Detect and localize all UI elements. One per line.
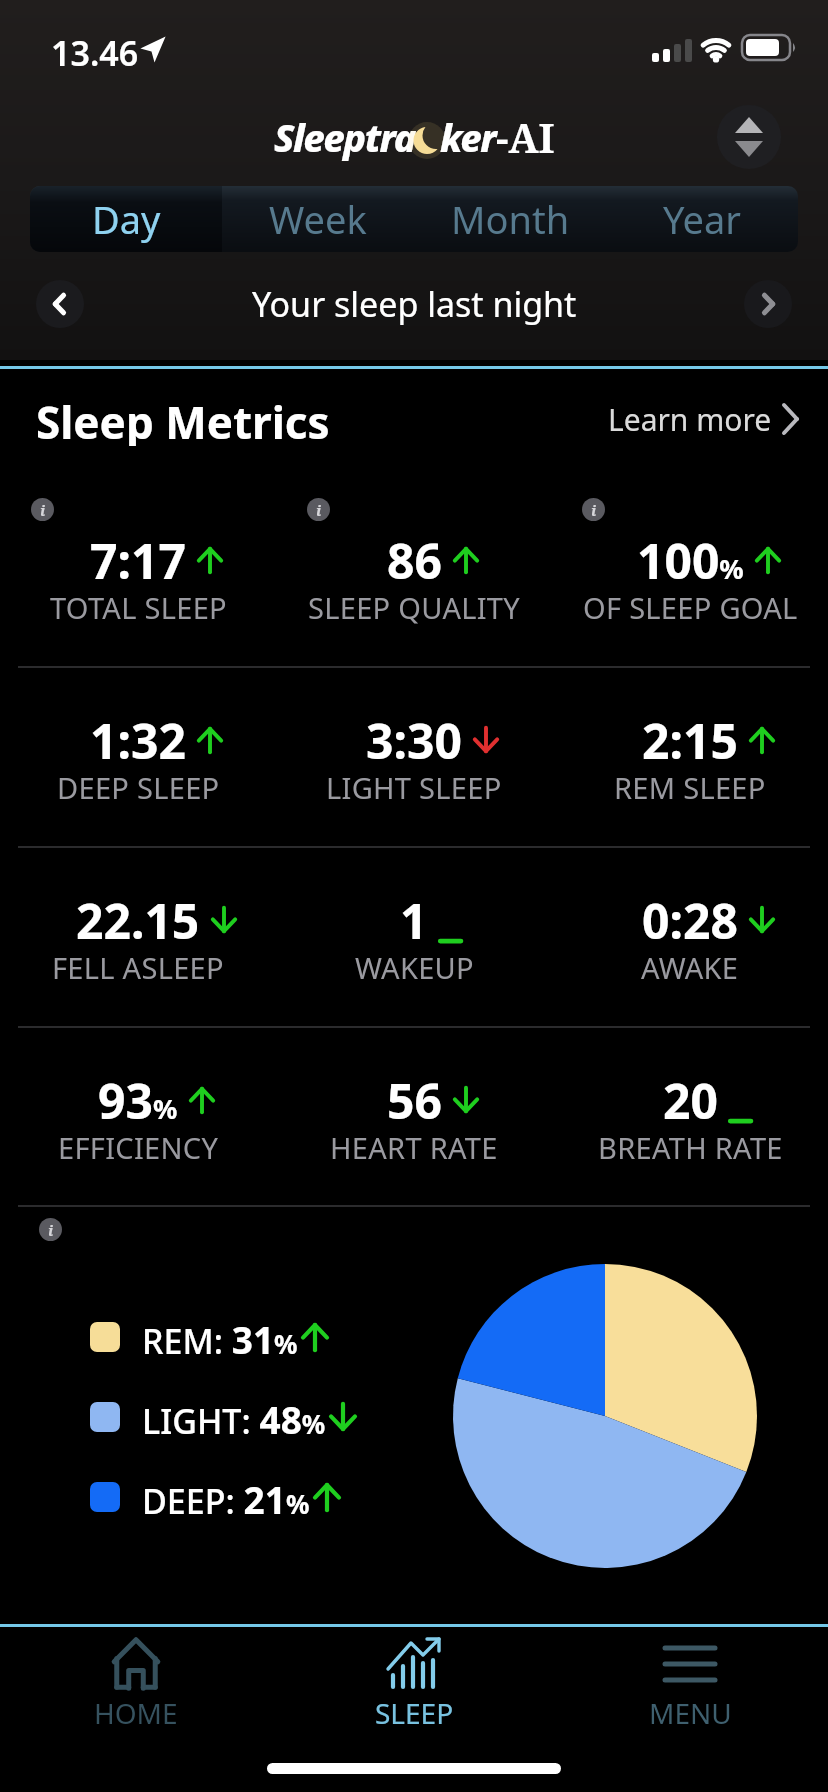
staticText: FELL ASLEEP (52, 948, 224, 984)
staticText: REM SLEEP (614, 768, 766, 804)
staticText: 56 (387, 1068, 442, 1132)
button[interactable] (744, 280, 792, 328)
staticText: LIGHT SLEEP (326, 768, 502, 804)
staticText: Your sleep last night (252, 281, 577, 327)
staticText: Sleeptra (274, 111, 415, 163)
staticText: AWAKE (641, 948, 739, 984)
staticText: HEART RATE (330, 1128, 498, 1164)
staticText: i (48, 1220, 54, 1240)
button[interactable]: MENU (615, 1630, 765, 1730)
staticText: WAKEUP (355, 948, 474, 984)
staticText: i (40, 500, 46, 520)
staticText: EFFICIENCY (58, 1128, 219, 1164)
staticText: Year (663, 193, 742, 245)
staticText: 2:15 (642, 708, 738, 772)
staticText: SLEEP (375, 1694, 454, 1728)
staticText: DEEP: 21% (142, 1474, 310, 1520)
button[interactable]: HOME (61, 1630, 211, 1730)
staticText: 100% (637, 528, 744, 592)
staticText: MENU (649, 1694, 732, 1728)
button[interactable]: Month (414, 186, 606, 252)
staticText: Sleep Metrics (36, 392, 330, 446)
staticText: 3:30 (366, 708, 462, 772)
staticText: -AI (496, 110, 555, 164)
staticText: REM: 31% (142, 1314, 298, 1360)
button[interactable]: SLEEP (339, 1630, 489, 1730)
button[interactable]: Learn more (608, 392, 818, 446)
staticText: HOME (94, 1694, 178, 1728)
button[interactable]: Day (30, 186, 222, 252)
staticText: 1:32 (90, 708, 186, 772)
staticText: i (591, 500, 597, 520)
staticText: Day (92, 193, 161, 245)
staticText: 7:17 (90, 528, 186, 592)
staticText: Week (269, 193, 367, 245)
staticText: 1 (400, 888, 428, 952)
staticText: 93% (98, 1068, 178, 1132)
staticText: LIGHT: 48% (142, 1394, 326, 1440)
button[interactable]: Year (606, 186, 798, 252)
staticText: DEEP SLEEP (57, 768, 220, 804)
button[interactable] (717, 105, 781, 169)
staticText: SLEEP QUALITY (308, 588, 521, 624)
staticText: i (316, 500, 322, 520)
staticText: 22.15 (76, 888, 200, 952)
staticText: 13.46 (51, 30, 139, 70)
staticText: Month (451, 193, 570, 245)
staticText: BREATH RATE (598, 1128, 783, 1164)
staticText: ker (440, 111, 496, 163)
staticText: OF SLEEP GOAL (583, 588, 798, 624)
button[interactable]: Week (222, 186, 414, 252)
staticText: 86 (387, 528, 442, 592)
staticText: 0:28 (642, 888, 738, 952)
staticText: Learn more (608, 399, 772, 440)
staticText: TOTAL SLEEP (50, 588, 227, 624)
button[interactable] (36, 280, 84, 328)
staticText: 20 (663, 1068, 718, 1132)
